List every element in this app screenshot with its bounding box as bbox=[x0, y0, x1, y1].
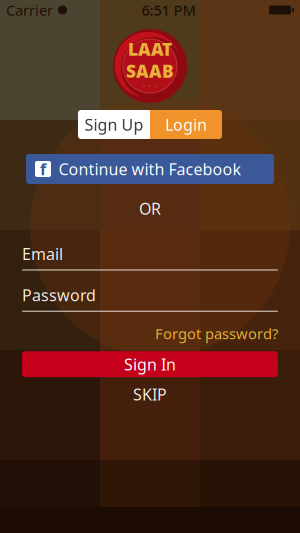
staticText: SAAB bbox=[126, 60, 174, 83]
staticText: 6:51 PM bbox=[141, 0, 195, 20]
staticText: Carrier bbox=[6, 0, 53, 20]
button[interactable]: Sign In bbox=[22, 351, 278, 377]
staticText: Email bbox=[22, 243, 63, 264]
staticText: OR bbox=[139, 198, 161, 219]
staticText: Sign In bbox=[124, 354, 176, 375]
staticText: SKIP bbox=[133, 384, 167, 405]
button[interactable]: Login bbox=[150, 110, 222, 139]
staticText: · · · bbox=[143, 82, 157, 90]
button[interactable]: Sign Up bbox=[78, 110, 150, 139]
staticText: f bbox=[40, 158, 46, 180]
staticText: Forgot password? bbox=[155, 324, 278, 343]
staticText: Password bbox=[22, 284, 96, 306]
staticText: Login bbox=[165, 114, 207, 135]
staticText: Continue with Facebook bbox=[58, 158, 241, 180]
staticText: LAAT bbox=[128, 38, 172, 61]
button[interactable]: Forgot password? bbox=[155, 324, 278, 343]
staticText: Sign Up bbox=[84, 114, 143, 135]
button[interactable]: Continue with Facebook bbox=[26, 154, 274, 184]
button[interactable]: SKIP bbox=[110, 383, 190, 405]
